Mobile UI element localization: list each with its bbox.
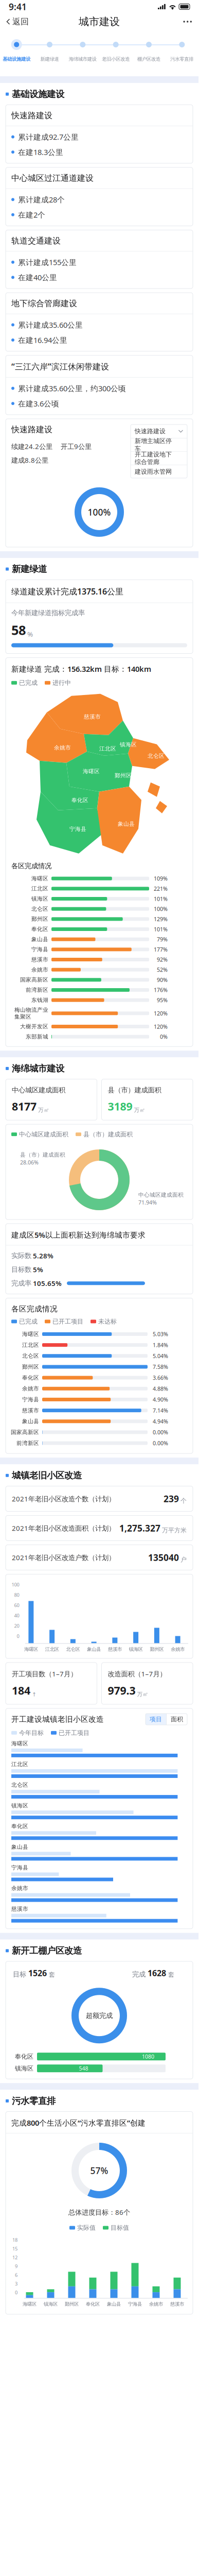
staticText: 万㎡ [38, 1107, 49, 1114]
button[interactable]: 污水零直排 [165, 30, 198, 76]
staticText: 4.88% [153, 1385, 168, 1392]
staticText: 基础设施建设 [12, 89, 64, 100]
staticText: 4.94% [153, 1418, 168, 1425]
staticText: 建成8.8公里 [11, 456, 48, 465]
staticText: 新建绿道 [40, 56, 59, 62]
staticText: 鄞州区 [31, 916, 48, 922]
staticText: 实际数 [11, 1251, 31, 1260]
staticText: 海曙区 [83, 768, 100, 775]
staticText: 江北区 [11, 1761, 28, 1768]
staticText: 100% [154, 905, 168, 913]
button[interactable]: 新建绿道 [33, 30, 66, 76]
staticText: 套 [49, 1971, 55, 1978]
staticText: 总体进度目标：86个 [68, 2208, 130, 2217]
staticText: 累计建成35.60公里 [18, 320, 83, 330]
staticText: % [27, 629, 33, 639]
button[interactable]: 新增主城区停车 [131, 438, 187, 451]
staticText: 江北区 [99, 745, 116, 752]
staticText: 开工项目数（1–7月） [12, 1669, 77, 1678]
staticText: 慈溪市 [22, 1407, 39, 1414]
staticText: 污水零直排 [170, 56, 193, 62]
staticText: 建成区5%以上面积新达到海绵城市要求 [11, 1230, 146, 1240]
button[interactable]: 老旧小区改造 [99, 30, 132, 76]
button[interactable]: 快速路建设 [131, 424, 187, 438]
staticText: 地下综合管廊建设 [11, 298, 77, 309]
staticText: 改造面积（1–7月） [108, 1669, 166, 1678]
staticText: 5% [33, 1265, 43, 1274]
staticText: 县（市）建成面积 [108, 1086, 161, 1094]
staticText: 奉化区 [15, 2053, 33, 2060]
staticText: 979.3 [108, 1683, 135, 1698]
staticText: 余姚市 [54, 744, 71, 751]
staticText: 已完成 [19, 1318, 38, 1325]
staticText: 新建绿道 [12, 564, 47, 575]
button[interactable]: 海绵城市建设 [66, 30, 99, 76]
button[interactable]: 面积 [167, 1714, 187, 1725]
button[interactable]: 返回 [0, 13, 33, 30]
staticText: 7.58% [153, 1363, 168, 1370]
staticText: ↑ [32, 1691, 37, 1698]
staticText: 完成 [132, 1970, 146, 1978]
staticText: 北仑区 [148, 753, 165, 759]
staticText: 目标值 [111, 2224, 129, 2232]
staticText: 3.66% [153, 1374, 168, 1381]
staticText: 101% [154, 895, 168, 902]
staticText: 象山县 [31, 936, 48, 943]
button[interactable]: 棚户区改造 [132, 30, 165, 76]
staticText: 101% [154, 926, 168, 933]
staticText: 今年目标 [19, 1729, 44, 1737]
staticText: 累计建成155公里 [18, 257, 77, 267]
staticText: 续建24.2公里 [11, 442, 52, 451]
staticText: 海绵城市建设 [12, 1063, 64, 1074]
staticText: 前湾新区 [26, 987, 48, 993]
staticText: 棚户区改造 [137, 56, 160, 62]
staticText: 92% [157, 956, 168, 963]
staticText: 江北区 [22, 1342, 39, 1348]
staticText: 慈溪市 [31, 956, 48, 963]
staticText: 今年新建绿道指标完成率 [11, 609, 85, 617]
button[interactable]: 更多 [177, 16, 198, 28]
staticText: 象山县 [107, 2301, 121, 2307]
staticText: 县（市）建成面积 [20, 1151, 65, 1158]
staticText: 北仑区 [31, 906, 48, 912]
staticText: 新建绿道 完成：156.32km 目标：140km [11, 664, 151, 674]
button[interactable]: 开工建设地下综合管廊 [131, 452, 187, 465]
staticText: 前湾新区 [16, 1440, 39, 1446]
staticText: 1628 [148, 1968, 166, 1978]
staticText: 轨道交通建设 [11, 236, 61, 246]
button[interactable]: 项目 [146, 1714, 166, 1725]
staticText: 未达标 [98, 1318, 117, 1325]
staticText: 105.65% [33, 1279, 62, 1288]
staticText: 58 [11, 621, 26, 639]
staticText: 221% [154, 885, 168, 892]
staticText: 象山县 [11, 1844, 28, 1850]
button[interactable]: 建设雨水管网 [131, 465, 187, 478]
staticText: 县（市）建成面积 [83, 1131, 133, 1138]
staticText: 返回 [12, 17, 29, 27]
staticText: 15 [12, 2245, 17, 2252]
staticText: 镇海区 [120, 741, 137, 748]
staticText: 慈溪市 [11, 1906, 28, 1912]
staticText: 109% [154, 875, 168, 882]
staticText: 8177 [12, 1099, 37, 1113]
staticText: 60 [14, 1602, 19, 1608]
staticText: 海曙区 [11, 1740, 28, 1747]
staticText: 余姚市 [22, 1385, 39, 1392]
staticText: 80 [14, 1592, 19, 1598]
staticText: 基础设施建设 [3, 56, 30, 62]
staticText: 71.94% [138, 1199, 157, 1206]
staticText: 万平方米 [162, 1526, 187, 1534]
staticText: 宁海县 [128, 2301, 142, 2307]
button[interactable]: 基础设施建设 [0, 30, 33, 76]
staticText: 镇海区 [44, 2301, 58, 2307]
staticText: 在建40公里 [18, 272, 57, 282]
staticText: 宁海县 [31, 946, 48, 953]
staticText: 江北区 [31, 885, 48, 892]
staticText: 东部新城 [26, 1033, 48, 1040]
staticText: 已完成 [19, 679, 38, 687]
staticText: 慈溪市 [108, 1646, 122, 1652]
staticText: 余姚市 [11, 1885, 28, 1892]
staticText: 鄞州区 [22, 1363, 39, 1370]
staticText: 海曙区 [22, 1331, 39, 1337]
staticText: 目标 [13, 1970, 26, 1978]
